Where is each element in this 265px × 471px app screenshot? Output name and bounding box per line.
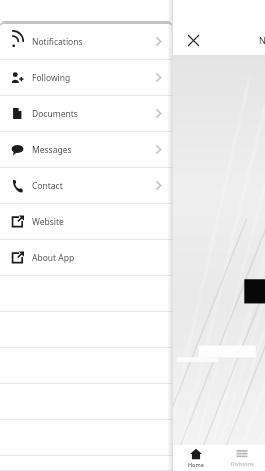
button[interactable]: Notifications	[0, 24, 172, 60]
staticText: Documents	[32, 108, 78, 120]
button[interactable]: Documents	[0, 96, 172, 132]
staticText: Messages	[32, 144, 72, 156]
staticText: Notifications	[32, 36, 83, 48]
button[interactable]: Divisions	[219, 445, 265, 471]
staticText: Divisions	[230, 460, 254, 467]
button[interactable]: Website	[0, 204, 172, 240]
button[interactable]: Close	[180, 27, 206, 53]
staticText: N	[259, 34, 265, 46]
button[interactable]: Messages	[0, 132, 172, 168]
button[interactable]: Home	[173, 445, 219, 471]
staticText: Contact	[32, 180, 63, 192]
staticText: Home	[188, 461, 204, 468]
staticText: Following	[32, 72, 71, 84]
button[interactable]: Following	[0, 60, 172, 96]
button[interactable]: About App	[0, 240, 172, 276]
button[interactable]: Contact	[0, 168, 172, 204]
staticText: About App	[32, 252, 75, 264]
staticText: Website	[32, 216, 64, 228]
